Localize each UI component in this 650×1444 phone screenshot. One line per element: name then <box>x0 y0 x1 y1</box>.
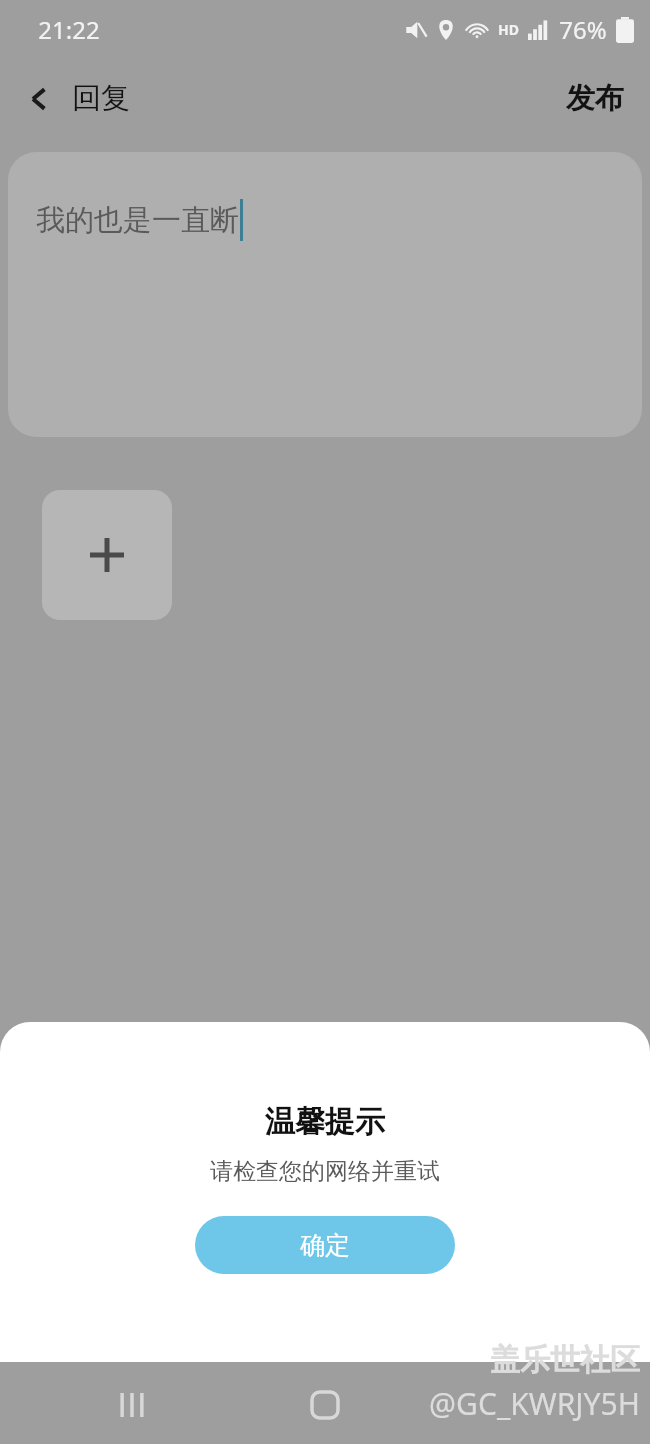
staticText: 温馨提示 <box>265 1103 385 1141</box>
staticText: 盖乐世社区 <box>490 1341 640 1379</box>
staticText: @GC_KWRJY5H <box>429 1383 640 1424</box>
staticText: 回复 <box>72 80 130 117</box>
button[interactable]: Back <box>0 72 142 125</box>
button[interactable]: 发布 <box>540 70 650 127</box>
button[interactable]: 确定 <box>195 1216 455 1274</box>
staticText: 请检查您的网络并重试 <box>210 1157 440 1186</box>
staticText: 76% <box>559 13 607 46</box>
staticText: 确定 <box>300 1230 350 1261</box>
staticText: 21:22 <box>38 13 100 46</box>
button[interactable]: Add photo <box>42 490 172 620</box>
staticText: HD <box>498 20 519 39</box>
other: Back <box>24 84 54 114</box>
button[interactable]: 我的也是一直断 <box>8 152 642 437</box>
button[interactable]: Home <box>301 1381 349 1429</box>
button[interactable]: Recent apps <box>108 1381 156 1429</box>
staticText: 发布 <box>566 80 624 117</box>
staticText: 我的也是一直断 <box>36 202 239 239</box>
